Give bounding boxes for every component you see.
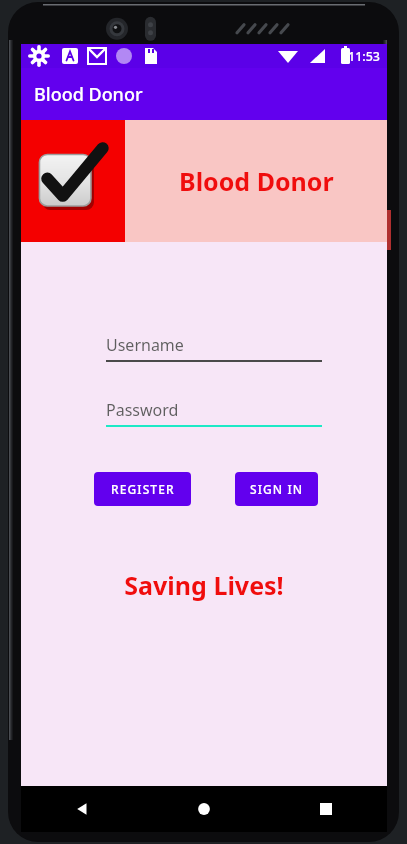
staticText: REGISTER [111,481,175,497]
button[interactable]: Username [106,334,322,362]
staticText: Password [106,399,179,421]
button[interactable]: SIGN IN [235,472,318,506]
staticText: Blood Donor [179,164,334,198]
button[interactable]: Password [106,399,322,427]
staticText: Username [106,334,184,356]
button[interactable]: Recent apps [265,786,387,832]
button[interactable]: Home [143,786,265,832]
staticText: 11:53 [348,48,381,65]
button[interactable]: REGISTER [94,472,191,506]
staticText: Blood Donor [34,82,143,107]
button[interactable]: Back [21,786,143,832]
staticText: SIGN IN [250,481,304,497]
staticText: Saving Lives! [21,568,387,602]
